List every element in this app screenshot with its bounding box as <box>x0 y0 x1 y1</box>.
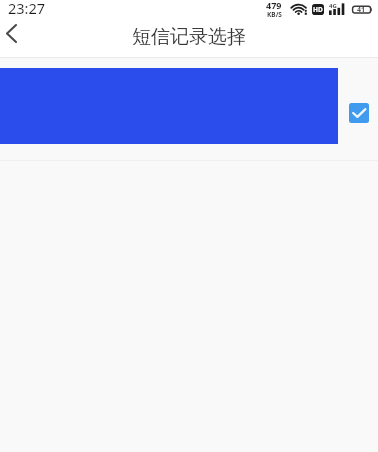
staticText: KB/S <box>267 10 282 18</box>
staticText: 41 <box>357 5 366 15</box>
button[interactable]: Selected <box>349 103 369 123</box>
staticText: HD <box>313 5 323 14</box>
staticText: 4G <box>329 2 337 10</box>
staticText: 479 <box>266 0 282 11</box>
staticText: 短信记录选择 <box>132 25 246 49</box>
button[interactable]: Back <box>0 20 44 57</box>
staticText: 23:27 <box>8 0 46 18</box>
